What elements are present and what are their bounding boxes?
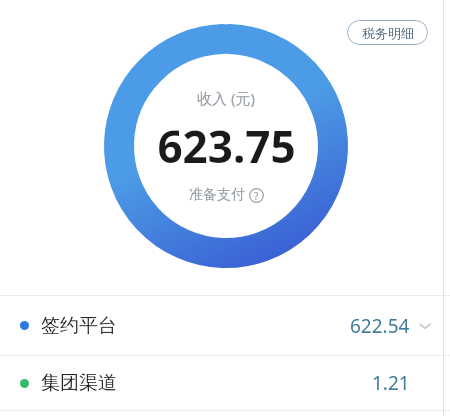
staticText: 1.21: [372, 370, 410, 396]
staticText: 收入 (元): [197, 88, 255, 108]
button[interactable]: 集团渠道: [0, 356, 450, 410]
staticText: 签约平台: [41, 314, 117, 338]
staticText: 623.75: [157, 116, 296, 176]
other: Expand: [418, 319, 432, 333]
staticText: 622.54: [350, 313, 410, 339]
staticText: 集团渠道: [41, 371, 117, 395]
staticText: ?: [254, 189, 259, 203]
button[interactable]: 签约平台: [0, 296, 450, 355]
staticText: 准备支付: [189, 186, 245, 204]
button[interactable]: Help: [249, 188, 264, 203]
staticText: 税务明细: [362, 25, 414, 41]
button[interactable]: 税务明细: [347, 20, 428, 45]
